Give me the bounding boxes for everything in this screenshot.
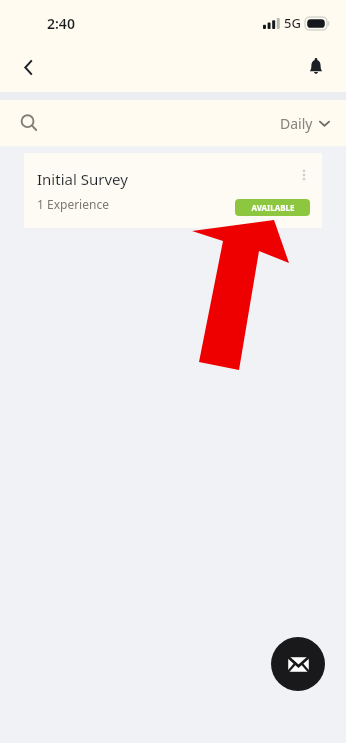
- staticText: Daily: [280, 114, 313, 133]
- button[interactable]: Back: [8, 47, 48, 87]
- button[interactable]: Daily: [266, 106, 346, 141]
- staticText: 5G: [284, 14, 301, 32]
- button[interactable]: More options: [288, 159, 320, 191]
- button[interactable]: Initial Survey: [24, 153, 322, 228]
- staticText: 2:40: [47, 14, 75, 33]
- staticText: AVAILABLE: [251, 202, 295, 213]
- button[interactable]: Search: [10, 104, 48, 142]
- staticText: 1 Experience: [37, 196, 109, 212]
- button[interactable]: Messages: [271, 637, 325, 691]
- staticText: Initial Survey: [37, 169, 128, 189]
- button[interactable]: Notifications: [296, 47, 336, 87]
- button[interactable]: AVAILABLE: [235, 199, 310, 216]
